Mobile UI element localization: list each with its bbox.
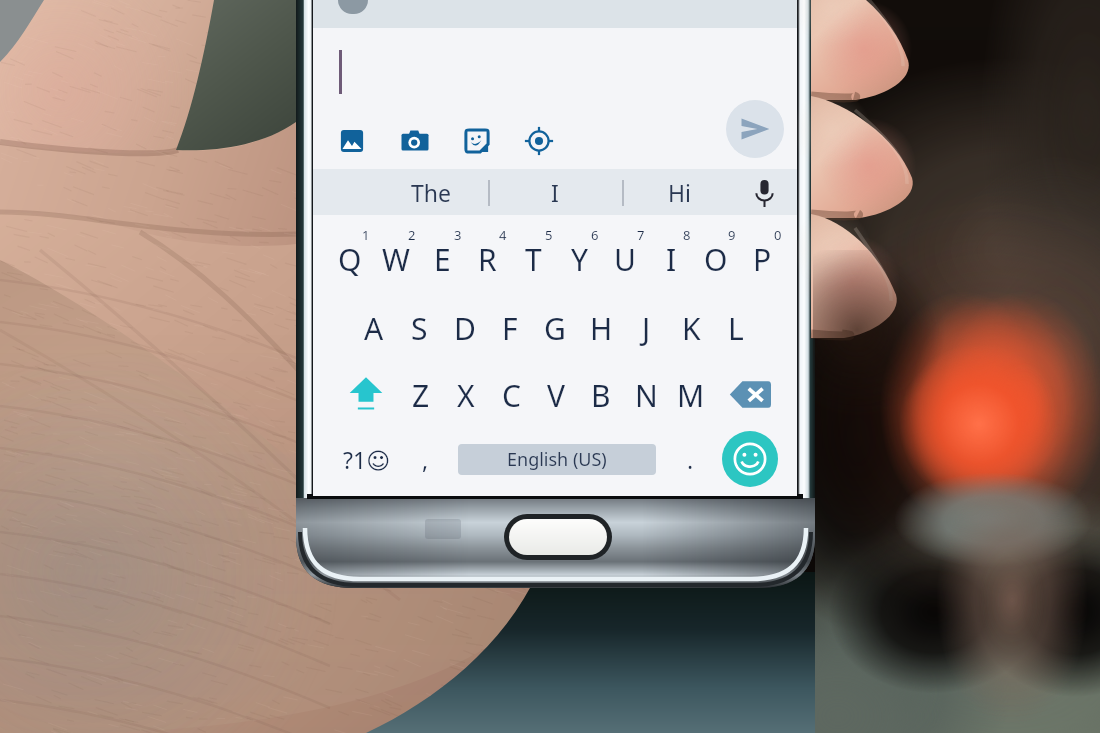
staticText: 1: [362, 226, 370, 244]
staticText: M: [677, 375, 705, 416]
button[interactable]: .: [676, 439, 704, 479]
button[interactable]: Home: [509, 519, 607, 555]
staticText: W: [382, 239, 410, 280]
staticText: 3: [454, 226, 462, 244]
button[interactable]: The: [369, 169, 493, 215]
staticText: 4: [499, 226, 507, 244]
staticText: F: [502, 308, 518, 349]
staticText: C: [502, 375, 521, 416]
staticText: 8: [683, 226, 691, 244]
staticText: X: [457, 375, 475, 416]
staticText: 0: [774, 226, 782, 244]
staticText: ?1☺: [343, 444, 391, 475]
staticText: G: [544, 308, 566, 349]
button[interactable]: Backspace: [720, 373, 780, 415]
staticText: Y: [571, 239, 588, 280]
button[interactable]: B: [579, 371, 623, 419]
button[interactable]: L: [714, 304, 758, 352]
staticText: 7: [637, 226, 645, 244]
staticText: ,: [422, 444, 429, 475]
staticText: L: [728, 308, 744, 349]
button[interactable]: O: [694, 235, 738, 283]
button[interactable]: I: [649, 235, 693, 283]
button[interactable]: X: [444, 371, 488, 419]
button[interactable]: F: [488, 304, 532, 352]
staticText: U: [614, 239, 636, 280]
staticText: I: [666, 239, 677, 280]
button[interactable]: T: [511, 235, 555, 283]
button[interactable]: Y: [557, 235, 601, 283]
button[interactable]: Q: [328, 235, 372, 283]
staticText: S: [411, 308, 428, 349]
button[interactable]: Sticker: [458, 122, 496, 160]
staticText: K: [682, 308, 701, 349]
staticText: Q: [338, 239, 362, 280]
button[interactable]: English (US): [458, 444, 656, 475]
button[interactable]: U: [603, 235, 647, 283]
staticText: B: [591, 375, 611, 416]
button[interactable]: K: [669, 304, 713, 352]
staticText: O: [704, 239, 728, 280]
staticText: English (US): [507, 447, 607, 472]
staticText: The: [411, 177, 451, 208]
staticText: V: [547, 375, 565, 416]
button[interactable]: Location: [520, 122, 558, 160]
button[interactable]: Voice input: [746, 178, 782, 208]
staticText: D: [454, 308, 476, 349]
staticText: P: [753, 239, 772, 280]
button[interactable]: W: [374, 235, 418, 283]
button[interactable]: G: [533, 304, 577, 352]
button[interactable]: I: [493, 169, 617, 215]
staticText: .: [687, 444, 694, 475]
button[interactable]: A: [352, 304, 396, 352]
button[interactable]: Z: [399, 371, 443, 419]
button[interactable]: M: [669, 371, 713, 419]
staticText: T: [525, 239, 542, 280]
button[interactable]: Camera: [396, 122, 434, 160]
staticText: J: [642, 308, 651, 349]
staticText: I: [551, 177, 559, 208]
button[interactable]: Hi: [617, 169, 741, 215]
button[interactable]: ,: [410, 437, 440, 481]
button[interactable]: C: [489, 371, 533, 419]
staticText: 5: [545, 226, 553, 244]
button[interactable]: S: [397, 304, 441, 352]
staticText: R: [478, 239, 497, 280]
button[interactable]: D: [443, 304, 487, 352]
staticText: N: [635, 375, 658, 416]
staticText: A: [364, 308, 384, 349]
button[interactable]: Send: [726, 100, 784, 158]
button[interactable]: E: [420, 235, 464, 283]
button[interactable]: R: [465, 235, 509, 283]
button[interactable]: Emoji: [722, 431, 778, 487]
button[interactable]: ?1☺: [332, 437, 402, 481]
staticText: H: [590, 308, 613, 349]
staticText: Hi: [668, 177, 691, 208]
button[interactable]: P: [740, 235, 784, 283]
button[interactable]: V: [534, 371, 578, 419]
button[interactable]: Shift: [342, 369, 390, 417]
staticText: 6: [591, 226, 599, 244]
button[interactable]: H: [579, 304, 623, 352]
staticText: 9: [728, 226, 736, 244]
button[interactable]: J: [624, 304, 668, 352]
staticText: Z: [412, 375, 430, 416]
button[interactable]: Gallery: [333, 122, 371, 160]
staticText: 2: [408, 226, 416, 244]
staticText: E: [434, 239, 451, 280]
button[interactable]: N: [624, 371, 668, 419]
